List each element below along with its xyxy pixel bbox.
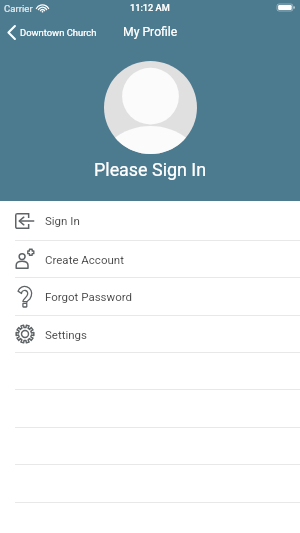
- staticText: My Profile: [123, 25, 178, 39]
- button[interactable]: Downtown Church: [0, 22, 105, 43]
- staticText: Settings: [45, 328, 87, 341]
- staticText: Create Account: [45, 253, 124, 266]
- staticText: Forgot Password: [45, 290, 133, 303]
- button[interactable]: Settings: [0, 316, 300, 353]
- button[interactable]: Create Account: [0, 241, 300, 278]
- staticText: Please Sign In: [94, 159, 207, 180]
- button[interactable]: Forgot Password: [0, 278, 300, 316]
- staticText: Downtown Church: [20, 27, 97, 38]
- staticText: Carrier: [4, 3, 33, 14]
- staticText: Sign In: [45, 214, 80, 227]
- button[interactable]: Sign In: [0, 201, 300, 241]
- staticText: 11:12 AM: [130, 2, 170, 13]
